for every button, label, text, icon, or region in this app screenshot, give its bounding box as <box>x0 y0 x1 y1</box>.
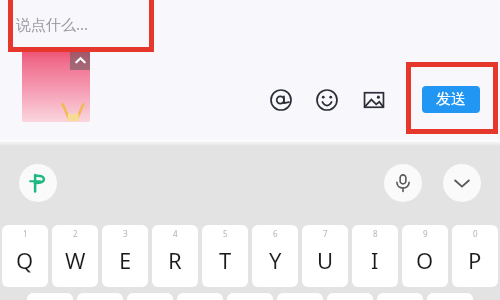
button[interactable]: Input method <box>19 164 57 202</box>
button[interactable]: 发送 <box>422 86 480 113</box>
staticText: 9 <box>423 228 428 239</box>
button[interactable]: G <box>227 293 273 300</box>
staticText: O <box>416 245 434 275</box>
staticText: 0 <box>473 228 478 239</box>
button[interactable]: Collapse image <box>70 50 90 70</box>
button[interactable]: Attached image <box>22 50 90 122</box>
button[interactable]: Mention <box>266 85 296 115</box>
button[interactable]: 说点什么... <box>16 9 144 39</box>
button[interactable]: Add image <box>359 85 389 115</box>
button[interactable]: 5 <box>202 225 248 287</box>
button[interactable]: D <box>127 293 173 300</box>
staticText: W <box>65 245 86 275</box>
button[interactable]: 2 <box>52 225 98 287</box>
button[interactable]: K <box>377 293 423 300</box>
staticText: P <box>468 245 482 275</box>
button[interactable]: Voice input <box>384 164 422 202</box>
staticText: 说点什么... <box>16 14 89 34</box>
staticText: 8 <box>373 228 378 239</box>
staticText: 4 <box>173 228 178 239</box>
staticText: Y <box>269 245 282 275</box>
button[interactable]: 9 <box>402 225 448 287</box>
staticText: Q <box>16 245 34 275</box>
staticText: 6 <box>273 228 278 239</box>
staticText: I <box>371 245 379 275</box>
staticText: 发送 <box>436 90 466 109</box>
staticText: 2 <box>73 228 78 239</box>
button[interactable]: S <box>77 293 123 300</box>
button[interactable]: Emoji <box>312 85 342 115</box>
button[interactable]: 4 <box>152 225 198 287</box>
staticText: 5 <box>223 228 228 239</box>
button[interactable]: Hide keyboard <box>443 164 481 202</box>
staticText: 3 <box>123 228 128 239</box>
button[interactable]: 6 <box>252 225 298 287</box>
button[interactable]: J <box>327 293 373 300</box>
button[interactable]: 8 <box>352 225 398 287</box>
button[interactable]: 7 <box>302 225 348 287</box>
button[interactable]: 3 <box>102 225 148 287</box>
button[interactable]: L <box>427 293 473 300</box>
button[interactable]: H <box>277 293 323 300</box>
button[interactable]: 0 <box>452 225 498 287</box>
button[interactable]: F <box>177 293 223 300</box>
button[interactable]: A <box>27 293 73 300</box>
staticText: T <box>219 245 232 275</box>
staticText: U <box>317 245 334 275</box>
staticText: 7 <box>323 228 328 239</box>
staticText: E <box>119 245 132 275</box>
button[interactable]: 1 <box>2 225 48 287</box>
staticText: 1 <box>23 228 28 239</box>
staticText: R <box>168 245 182 275</box>
